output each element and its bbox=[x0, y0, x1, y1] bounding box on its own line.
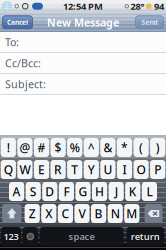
button[interactable]: T bbox=[67, 160, 82, 179]
staticText: H bbox=[95, 183, 104, 199]
staticText: # bbox=[37, 139, 45, 155]
button[interactable]: V bbox=[74, 204, 90, 223]
button[interactable]: # bbox=[34, 138, 49, 157]
button[interactable]: A bbox=[9, 182, 24, 201]
staticText: 123 bbox=[3, 230, 18, 243]
staticText: B bbox=[95, 205, 103, 221]
staticText: A bbox=[13, 183, 21, 199]
button[interactable]: J bbox=[109, 182, 124, 201]
button[interactable]: W bbox=[17, 160, 32, 179]
staticText: T bbox=[71, 161, 78, 177]
staticText: * bbox=[121, 139, 128, 155]
staticText: Q bbox=[4, 161, 13, 177]
button[interactable]: R bbox=[50, 160, 66, 179]
button[interactable]: G bbox=[75, 182, 91, 201]
staticText: Subject: bbox=[5, 77, 46, 91]
staticText: W bbox=[19, 161, 30, 177]
button[interactable]: Z bbox=[25, 204, 40, 223]
button[interactable]: I bbox=[117, 160, 132, 179]
staticText: P bbox=[154, 161, 161, 177]
button[interactable]: ( bbox=[133, 138, 149, 157]
button[interactable]: K bbox=[125, 182, 140, 201]
button[interactable]: M bbox=[124, 204, 139, 223]
button[interactable]: C bbox=[58, 204, 73, 223]
button[interactable]: O bbox=[133, 160, 149, 179]
button[interactable]: U bbox=[100, 160, 115, 179]
staticText: M bbox=[126, 205, 137, 221]
staticText: & bbox=[103, 139, 112, 155]
staticText: Cc/Bcc: bbox=[5, 56, 41, 70]
button[interactable]: X bbox=[41, 204, 56, 223]
staticText: $ bbox=[55, 139, 62, 155]
staticText: Z bbox=[29, 205, 36, 221]
button[interactable]: Q bbox=[1, 160, 16, 179]
button[interactable]: $ bbox=[50, 138, 66, 157]
button[interactable]: * bbox=[117, 138, 132, 157]
staticText: D bbox=[45, 183, 54, 199]
button[interactable]: ) bbox=[150, 138, 165, 157]
staticText: F bbox=[63, 183, 69, 199]
staticText: E bbox=[38, 161, 45, 177]
button[interactable]: & bbox=[100, 138, 115, 157]
staticText: I bbox=[122, 161, 126, 177]
staticText: space bbox=[69, 230, 95, 243]
button[interactable]: Send bbox=[135, 16, 163, 29]
staticText: @ bbox=[19, 139, 30, 155]
staticText: G bbox=[78, 183, 87, 199]
button[interactable]: % bbox=[67, 138, 82, 157]
staticText: ) bbox=[156, 139, 160, 155]
staticText: return bbox=[131, 230, 160, 243]
staticText: Cancel bbox=[7, 18, 28, 27]
staticText: New Message bbox=[47, 15, 119, 29]
staticText: ! bbox=[7, 139, 10, 155]
staticText: To: bbox=[5, 35, 19, 49]
staticText: J bbox=[115, 183, 118, 199]
button[interactable]: Shift bbox=[2, 204, 22, 223]
staticText: N bbox=[111, 205, 120, 221]
button[interactable]: Dictation bbox=[23, 227, 38, 246]
button[interactable]: E bbox=[34, 160, 49, 179]
staticText: ^ bbox=[88, 139, 95, 155]
button[interactable]: S bbox=[26, 182, 41, 201]
staticText: S bbox=[30, 183, 37, 199]
staticText: O bbox=[137, 161, 146, 177]
staticText: U bbox=[103, 161, 112, 177]
button[interactable]: return bbox=[127, 227, 164, 246]
button[interactable]: L bbox=[142, 182, 157, 201]
staticText: R bbox=[54, 161, 62, 177]
button[interactable]: 123 bbox=[1, 227, 21, 246]
button[interactable]: space bbox=[40, 227, 123, 246]
staticText: 12:54 PM bbox=[63, 0, 103, 12]
button[interactable]: ^ bbox=[84, 138, 99, 157]
button[interactable]: H bbox=[92, 182, 107, 201]
staticText: 94 bbox=[154, 0, 164, 12]
button[interactable]: P bbox=[150, 160, 165, 179]
staticText: ( bbox=[139, 139, 143, 155]
button[interactable]: D bbox=[42, 182, 57, 201]
button[interactable]: N bbox=[108, 204, 123, 223]
staticText: % bbox=[70, 139, 80, 155]
button[interactable]: F bbox=[59, 182, 74, 201]
staticText: C bbox=[61, 205, 69, 221]
staticText: V bbox=[78, 205, 85, 221]
button[interactable]: Delete bbox=[145, 204, 163, 223]
staticText: L bbox=[146, 183, 152, 199]
staticText: Y bbox=[88, 161, 95, 177]
staticText: Send bbox=[141, 18, 157, 27]
button[interactable]: ! bbox=[1, 138, 16, 157]
staticText: 28° bbox=[130, 0, 144, 12]
button[interactable]: Cancel bbox=[2, 16, 32, 29]
button[interactable]: @ bbox=[17, 138, 32, 157]
staticText: X bbox=[45, 205, 52, 221]
staticText: K bbox=[129, 183, 137, 199]
button[interactable]: Y bbox=[84, 160, 99, 179]
button[interactable]: B bbox=[91, 204, 106, 223]
